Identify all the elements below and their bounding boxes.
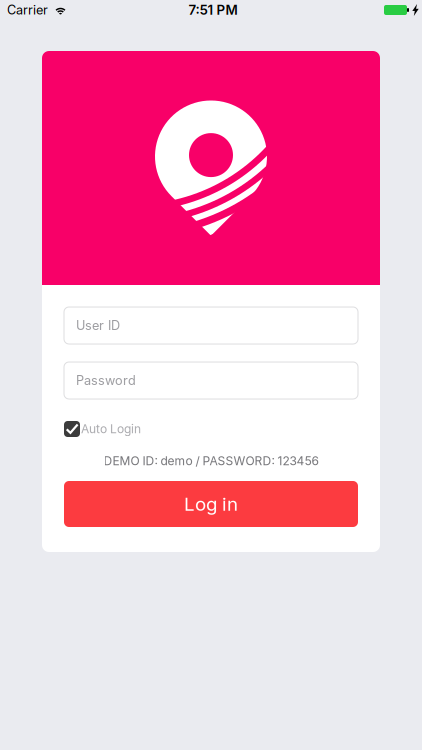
staticText: 7:51 PM <box>188 2 237 18</box>
staticText: Auto Login <box>81 422 141 436</box>
button[interactable]: Password <box>64 362 358 399</box>
staticText: DEMO ID: demo / PASSWORD: 123456 <box>103 454 318 468</box>
button[interactable]: Log in <box>64 481 358 527</box>
staticText: Log in <box>184 493 238 515</box>
staticText: Password <box>76 373 136 388</box>
button[interactable]: User ID <box>64 307 358 344</box>
button[interactable]: Auto Login <box>64 421 141 437</box>
staticText: Carrier <box>7 2 48 18</box>
staticText: User ID <box>76 318 120 333</box>
